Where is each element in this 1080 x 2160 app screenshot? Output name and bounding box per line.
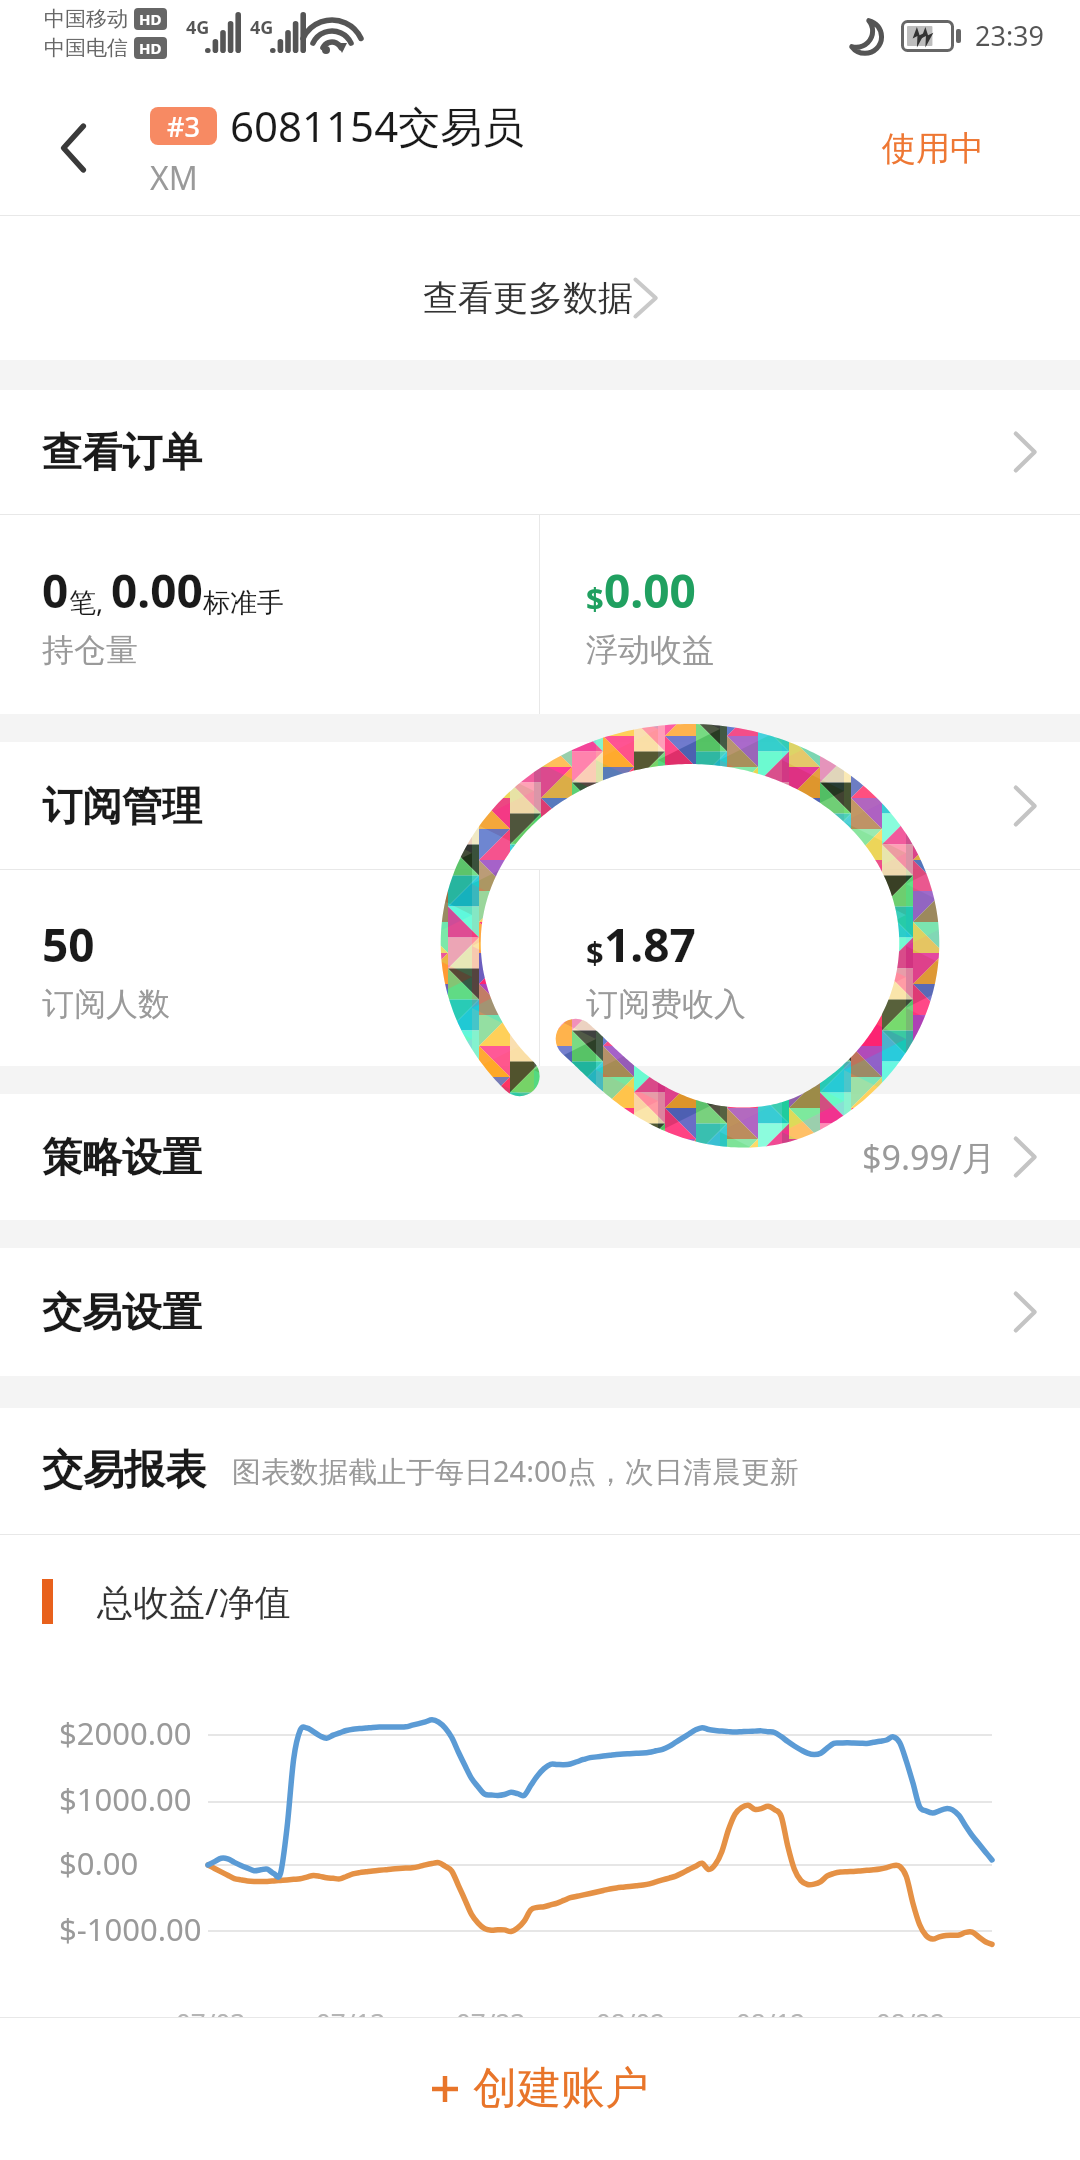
staticText: 0 [42, 559, 69, 622]
staticText: 07/03 [176, 2004, 246, 2039]
button[interactable]: Back [0, 80, 150, 216]
staticText: HD [139, 9, 162, 29]
staticText: 1.87 [604, 913, 696, 976]
staticText: 总收益/净值 [97, 1577, 291, 1626]
staticText: 使用中 [882, 127, 984, 170]
button[interactable]: 订阅管理 [0, 742, 1080, 869]
staticText: 08/22 [876, 2004, 946, 2039]
staticText: 07/23 [456, 2004, 526, 2039]
staticText: #3 [167, 108, 200, 145]
staticText: 订阅管理 [42, 781, 202, 831]
staticText: 50 [42, 913, 95, 976]
staticText: 图表数据截止于每日24:00点，次日清晨更新 [232, 1451, 800, 1491]
staticText: 浮动收益 [586, 630, 714, 670]
staticText: 中国移动 [44, 6, 128, 32]
button[interactable]: 查看订单 [0, 390, 1080, 514]
staticText: 创建账户 [473, 2061, 649, 2116]
staticText: 08/02 [596, 2004, 666, 2039]
staticText: $0.00 [59, 1842, 139, 1884]
button[interactable]: 查看更多数据 [0, 216, 1080, 360]
staticText: 4G [250, 15, 274, 40]
staticText: $2000.00 [59, 1712, 192, 1754]
staticText: 笔, [69, 583, 111, 620]
staticText: $-1000.00 [59, 1908, 202, 1950]
staticText: 标准手 [203, 586, 284, 620]
staticText: 策略设置 [42, 1132, 202, 1182]
staticText: 6081154交易员 [230, 97, 525, 154]
staticText: $ [586, 931, 604, 973]
staticText: 交易设置 [42, 1287, 202, 1337]
staticText: 中国电信 [44, 35, 128, 61]
staticText: 持仓量 [42, 630, 138, 670]
staticText: 交易报表 [42, 1445, 206, 1497]
staticText: 08/12 [736, 2004, 806, 2039]
staticText: $ [586, 577, 604, 619]
button[interactable]: 交易设置 [0, 1248, 1080, 1376]
staticText: 订阅人数 [42, 984, 170, 1024]
staticText: 07/13 [316, 2004, 386, 2039]
staticText: $1000.00 [59, 1778, 192, 1820]
staticText: 查看订单 [42, 427, 202, 477]
staticText: 订阅费收入 [586, 984, 746, 1024]
staticText: 23:39 [975, 17, 1045, 54]
staticText: XM [150, 156, 198, 200]
staticText: HD [139, 38, 162, 58]
staticText: 4G [186, 15, 210, 40]
staticText: 0.00 [111, 559, 203, 622]
staticText: 查看更多数据 [423, 276, 633, 320]
staticText: 0.00 [604, 559, 696, 622]
button[interactable]: 使用中 [876, 119, 990, 178]
button[interactable]: 策略设置 [0, 1094, 1080, 1220]
button[interactable]: 创建账户 [0, 2017, 1080, 2160]
staticText: $9.99/月 [862, 1134, 996, 1180]
